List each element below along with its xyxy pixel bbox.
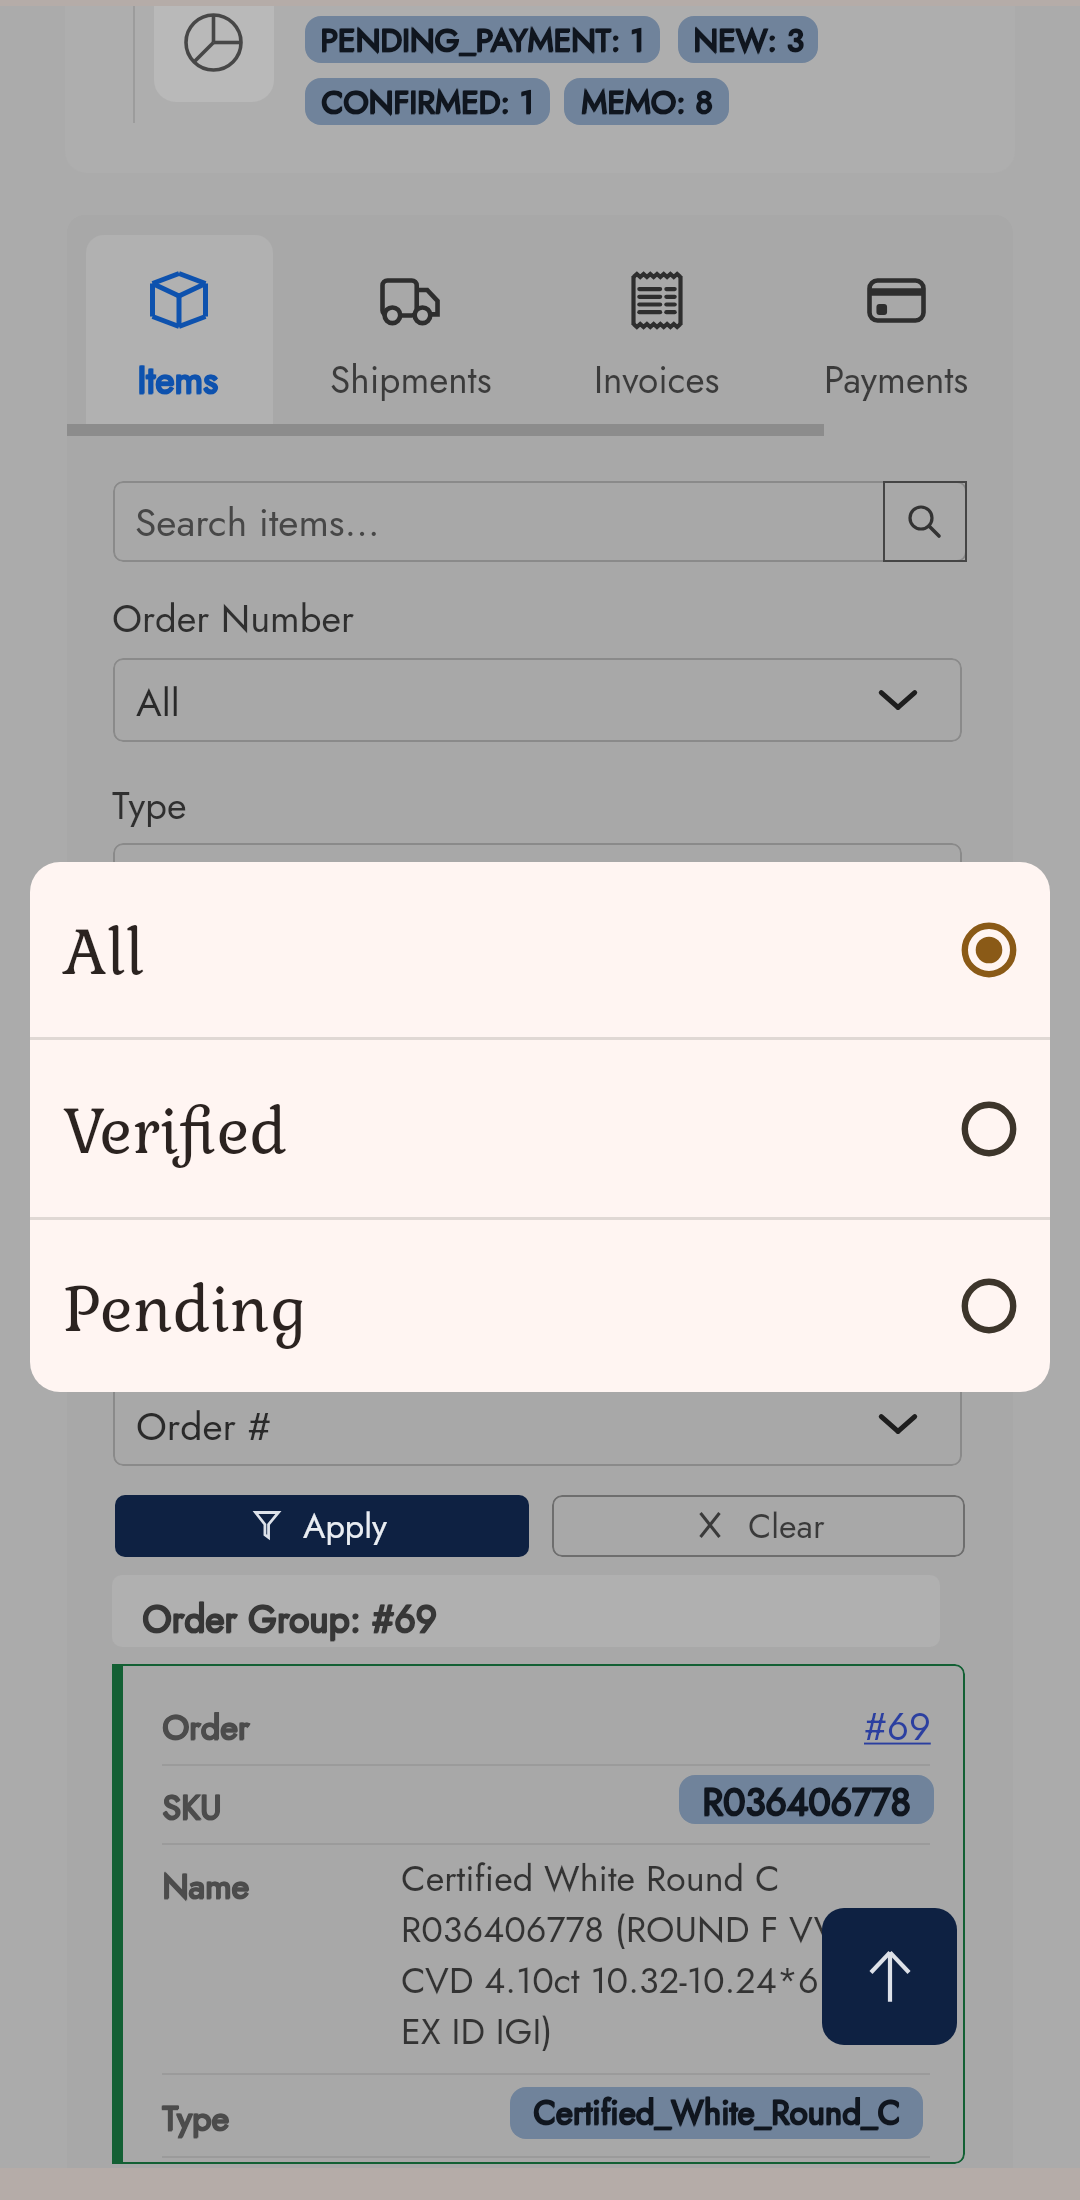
staticText: SKU	[162, 1783, 222, 1832]
staticText: All	[63, 913, 958, 992]
staticText: CONFIRMED: 1	[322, 79, 535, 125]
staticText: Order	[162, 1703, 250, 1752]
staticText: R036406778	[703, 1775, 912, 1824]
button[interactable]: Verified	[30, 1040, 1050, 1217]
staticText: Certified_White_Round_C	[533, 2090, 900, 2138]
staticText: NEW: 3	[693, 17, 804, 63]
staticText: MEMO: 8	[582, 79, 714, 125]
staticText: Shipments	[330, 353, 492, 406]
staticText: Type	[162, 2095, 229, 2144]
staticText: PENDING_PAYMENT: 1	[320, 17, 645, 63]
staticText: Verified	[63, 1092, 958, 1171]
staticText: Certified_White_Round_C	[534, 2089, 901, 2137]
staticText: Name	[162, 1862, 249, 1911]
staticText: Order Group: #69	[142, 1592, 437, 1645]
staticText: Items	[137, 354, 218, 407]
staticText: Name	[162, 1863, 249, 1912]
button[interactable]: Pending	[30, 1220, 1050, 1392]
staticText: Type	[162, 2094, 229, 2143]
button[interactable]: All	[30, 862, 1050, 1037]
staticText: Type	[163, 2094, 230, 2143]
staticText: NEW: 3	[693, 18, 804, 63]
staticText: NEW: 3	[694, 17, 805, 63]
staticText: MEMO: 8	[581, 79, 713, 125]
staticText: Clear	[748, 1502, 825, 1551]
button[interactable]: Apply	[115, 1495, 529, 1557]
staticText: Order Number	[112, 591, 355, 646]
button[interactable]: Order #	[113, 1382, 962, 1466]
staticText: Apply	[303, 1502, 387, 1551]
staticText: Pending	[63, 1270, 958, 1349]
staticText: SKU	[163, 1783, 223, 1832]
staticText: Order Group: #69	[142, 1593, 437, 1646]
staticText: R036406778	[702, 1776, 911, 1824]
staticText: #69	[864, 1699, 931, 1754]
staticText: Certified_White_Round_C	[533, 2089, 900, 2137]
staticText: Order Group: #69	[143, 1592, 438, 1645]
staticText: CONFIRMED: 1	[321, 79, 534, 125]
staticText: Order	[162, 1704, 250, 1753]
staticText: Search items…	[135, 494, 380, 550]
button[interactable]: Scroll to top	[822, 1908, 957, 2045]
staticText: All	[136, 859, 180, 915]
staticText: Items	[137, 353, 218, 406]
staticText: SKU	[162, 1784, 222, 1833]
staticText: Payments	[824, 353, 969, 406]
button[interactable]: Search	[883, 481, 967, 562]
button[interactable]: Clear	[552, 1495, 965, 1557]
staticText: Name	[163, 1862, 250, 1911]
button[interactable]: All	[113, 843, 962, 927]
staticText: Sort	[112, 963, 176, 1018]
staticText: MEMO: 8	[581, 80, 713, 125]
staticText: R036406778	[702, 1775, 911, 1824]
staticText: Order	[163, 1703, 251, 1752]
staticText: Invoices	[594, 353, 720, 406]
staticText: Type	[112, 778, 187, 833]
button[interactable]	[86, 235, 273, 425]
staticText: PENDING_PAYMENT: 1	[320, 18, 645, 63]
staticText: Order #	[136, 1398, 272, 1454]
staticText: Certified White Round C R036406778 (ROUN…	[401, 1852, 901, 2057]
staticText: Items	[138, 353, 219, 406]
staticText: CONFIRMED: 1	[321, 80, 534, 125]
staticText: All	[136, 674, 180, 730]
staticText: PENDING_PAYMENT: 1	[321, 17, 646, 63]
button[interactable]: All	[113, 658, 962, 742]
button[interactable]	[113, 481, 967, 562]
